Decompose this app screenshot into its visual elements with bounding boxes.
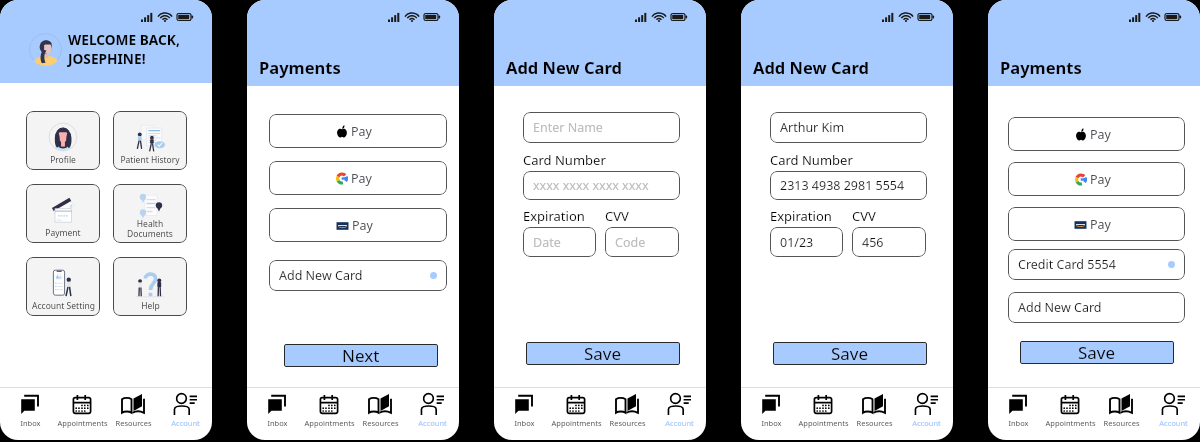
staticText: CVV — [605, 207, 629, 225]
staticText: Expiration — [523, 207, 605, 225]
button[interactable]: 01/23 — [770, 227, 843, 257]
button[interactable]: Inbox — [252, 388, 303, 428]
button[interactable]: Resources — [602, 388, 653, 428]
staticText: 01/23 — [780, 234, 814, 251]
button[interactable]: Account Setting — [26, 257, 100, 316]
staticText: Code — [615, 234, 646, 251]
staticText: Pay — [1090, 171, 1111, 188]
staticText: CVV — [852, 207, 876, 225]
button[interactable]: Account — [160, 388, 211, 428]
staticText: Pay — [1090, 126, 1111, 143]
button[interactable]: Resources — [1096, 388, 1147, 428]
staticText: Resources — [856, 418, 893, 428]
staticText: Pay — [1090, 216, 1111, 233]
staticText: Add New Card — [506, 56, 622, 78]
button[interactable]: Inbox — [499, 388, 550, 428]
staticText: Credit Card 5554 — [1018, 256, 1116, 273]
staticText: Inbox — [1008, 418, 1029, 428]
button[interactable]: Credit Card 5554 — [1008, 249, 1185, 280]
button[interactable]: Appointments — [551, 388, 602, 428]
button[interactable]: Appointments — [304, 388, 355, 428]
staticText: Patient History — [120, 154, 180, 166]
staticText: Help — [141, 300, 160, 312]
button[interactable]: xxxx xxxx xxxx xxxx — [523, 171, 680, 200]
button[interactable]: Add New Card — [269, 260, 447, 291]
button[interactable]: 2313 4938 2981 5554 — [770, 171, 927, 200]
button[interactable]: Next — [284, 344, 438, 367]
staticText: Expiration — [770, 207, 852, 225]
button[interactable]: Appointments — [57, 388, 108, 428]
staticText: Card Number — [770, 151, 853, 169]
button[interactable]: Enter Name — [523, 112, 680, 143]
staticText: Add New Card — [1018, 299, 1102, 316]
staticText: Account — [171, 418, 200, 428]
staticText: Pay — [351, 170, 372, 187]
button[interactable]: Code — [605, 227, 679, 257]
button[interactable]: Resources — [849, 388, 900, 428]
button[interactable]: Inbox — [746, 388, 797, 428]
staticText: Pay — [351, 123, 372, 140]
button[interactable]: Profile — [26, 111, 100, 170]
staticText: 2313 4938 2981 5554 — [780, 177, 905, 194]
button[interactable]: Pay — [1008, 162, 1185, 196]
staticText: xxxx xxxx xxxx xxxx — [533, 177, 649, 194]
button[interactable]: Appointments — [798, 388, 849, 428]
staticText: Appointments — [1045, 418, 1096, 428]
button[interactable]: Resources — [355, 388, 406, 428]
staticText: Pay — [352, 217, 373, 234]
button[interactable]: Pay — [1008, 117, 1185, 151]
staticText: Appointments — [304, 418, 355, 428]
button[interactable]: Save — [526, 342, 680, 365]
button[interactable]: Account — [901, 388, 952, 428]
button[interactable]: Pay — [269, 208, 447, 242]
button[interactable]: Save — [773, 342, 927, 365]
staticText: Inbox — [761, 418, 782, 428]
button[interactable]: Resources — [108, 388, 159, 428]
button[interactable]: 456 — [852, 227, 926, 257]
staticText: Arthur Kim — [780, 119, 845, 136]
button[interactable]: Arthur Kim — [770, 112, 927, 143]
staticText: Add New Card — [753, 56, 869, 78]
button[interactable]: Pay — [1008, 207, 1185, 241]
button[interactable]: Date — [523, 227, 596, 257]
staticText: Health Documents — [127, 218, 173, 239]
button[interactable]: Inbox — [993, 388, 1044, 428]
staticText: Account — [1159, 418, 1188, 428]
button[interactable]: Pay — [269, 161, 447, 195]
staticText: Save — [1078, 341, 1116, 364]
button[interactable]: Health Documents — [113, 184, 187, 243]
staticText: Card Number — [523, 151, 606, 169]
button[interactable]: Payment — [26, 184, 100, 243]
staticText: Payment — [45, 227, 81, 239]
staticText: WELCOME BACK, JOSEPHINE! — [68, 30, 180, 68]
button[interactable]: Help — [113, 257, 187, 316]
staticText: Resources — [362, 418, 399, 428]
staticText: Payments — [259, 56, 341, 78]
button[interactable]: Appointments — [1045, 388, 1096, 428]
staticText: Enter Name — [533, 119, 603, 136]
button[interactable]: Inbox — [5, 388, 56, 428]
button[interactable]: Save — [1020, 341, 1174, 364]
staticText: Appointments — [551, 418, 602, 428]
button[interactable]: Account — [1148, 388, 1199, 428]
staticText: Account — [418, 418, 447, 428]
staticText: Save — [584, 342, 622, 365]
button[interactable]: Add New Card — [1008, 292, 1185, 323]
staticText: Appointments — [57, 418, 108, 428]
button[interactable]: Account — [654, 388, 705, 428]
staticText: Add New Card — [279, 267, 363, 284]
staticText: Account — [665, 418, 694, 428]
staticText: Payments — [1000, 56, 1082, 78]
staticText: Inbox — [514, 418, 535, 428]
staticText: Date — [533, 234, 561, 251]
button[interactable]: Patient History — [113, 111, 187, 170]
staticText: 456 — [862, 234, 884, 251]
staticText: Save — [831, 342, 869, 365]
staticText: Inbox — [267, 418, 288, 428]
staticText: Appointments — [798, 418, 849, 428]
staticText: Resources — [115, 418, 152, 428]
staticText: Account Setting — [32, 300, 95, 312]
staticText: Profile — [50, 154, 76, 166]
button[interactable]: Pay — [269, 114, 447, 148]
button[interactable]: Account — [407, 388, 458, 428]
